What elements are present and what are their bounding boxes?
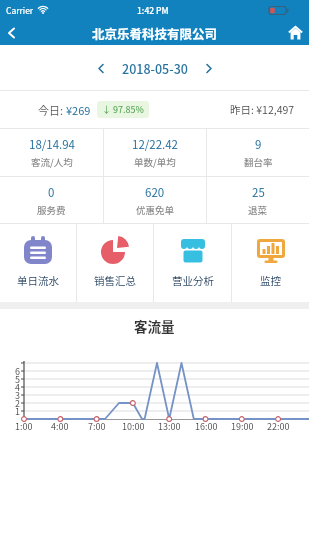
staticText: 9 [255,136,262,153]
button[interactable]: 销售汇总 [77,224,153,302]
staticText: 25 [252,184,265,201]
staticText: 620 [145,184,165,201]
staticText: 16:00 [195,420,218,433]
staticText: 客流/人均 [31,155,73,169]
button[interactable]: 9 [207,129,309,176]
staticText: 单数/单均 [134,155,176,169]
staticText: 4:00 [51,420,69,433]
button[interactable]: 25 [207,177,309,223]
staticText: 监控 [260,273,281,288]
staticText: ¥269 [66,102,91,118]
staticText: 12/22.42 [132,136,178,153]
staticText: Carrier [6,4,34,16]
staticText: 昨日: ¥12,497 [230,102,295,117]
staticText: 1 [15,405,20,417]
button[interactable] [88,53,114,83]
staticText: 2018-05-30 [122,59,188,77]
staticText: 5 [15,373,20,385]
staticText: 翻台率 [244,155,273,169]
button[interactable]: 620 [104,177,206,223]
staticText: 22:00 [267,420,290,433]
staticText: 18/14.94 [29,136,75,153]
staticText: 1:42 PM [137,4,169,16]
button[interactable]: 营业分析 [154,224,231,302]
staticText: 服务费 [37,203,66,217]
staticText: ↓ 97.85% [102,103,144,116]
staticText: 10:00 [122,420,145,433]
staticText: 19:00 [231,420,254,433]
staticText: 今日: [38,102,66,118]
staticText: 退菜 [248,203,268,217]
staticText: 北京乐肴科技有限公司 [92,24,218,42]
button[interactable]: 单日流水 [0,224,76,302]
staticText: 1:00 [15,420,33,433]
staticText: 销售汇总 [94,273,136,288]
staticText: 3 [15,389,20,401]
staticText: 营业分析 [172,273,214,288]
staticText: 7:00 [88,420,106,433]
button[interactable]: 0 [0,177,103,223]
staticText: 单日流水 [17,273,59,288]
button[interactable]: 监控 [232,224,309,302]
button[interactable] [196,53,222,83]
staticText: 4 [15,381,20,393]
staticText: 6 [15,365,20,377]
staticText: 客流量 [134,316,175,336]
button[interactable]: 12/22.42 [104,129,206,176]
staticText: 2 [15,397,20,409]
button[interactable]: 18/14.94 [0,129,103,176]
staticText: 13:00 [158,420,181,433]
button[interactable] [281,20,309,45]
staticText: 优惠免单 [136,203,175,217]
staticText: 0 [48,184,55,201]
button[interactable] [0,20,24,45]
